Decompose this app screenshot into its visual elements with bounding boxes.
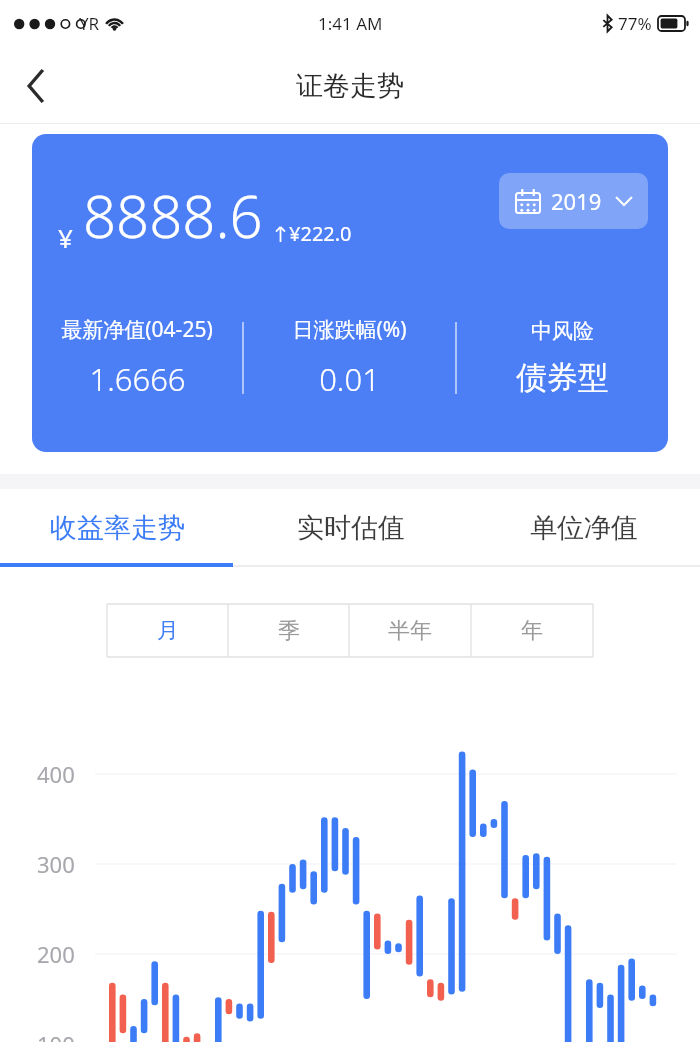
button[interactable]: Back xyxy=(8,58,64,114)
staticText: ¥ xyxy=(58,220,73,255)
button[interactable]: 实时估值 xyxy=(234,489,467,567)
staticText: 实时估值 xyxy=(297,511,405,545)
staticText: 最新净值(04-25) xyxy=(61,315,213,344)
button[interactable]: 季 xyxy=(228,604,349,657)
staticText: 半年 xyxy=(388,617,432,645)
staticText: 收益率走势 xyxy=(50,511,185,545)
button[interactable]: 月 xyxy=(107,604,228,657)
staticText: 单位净值 xyxy=(530,511,638,545)
button[interactable]: 收益率走势 xyxy=(0,489,234,567)
staticText: 年 xyxy=(521,617,543,645)
staticText: 77% xyxy=(618,12,652,35)
staticText: 400 xyxy=(37,759,75,789)
staticText: 债券型 xyxy=(516,358,609,397)
staticText: 100 xyxy=(37,1029,75,1042)
staticText: 8888.6 xyxy=(83,176,263,255)
staticText: 0.01 xyxy=(319,358,380,400)
staticText: YR xyxy=(79,12,100,35)
staticText: 证卷走势 xyxy=(296,69,404,103)
staticText: 季 xyxy=(278,617,300,645)
button[interactable]: 年 xyxy=(471,604,593,657)
staticText: 1.6666 xyxy=(89,358,186,400)
staticText: 中风险 xyxy=(531,318,594,344)
staticText: 2019 xyxy=(551,186,602,216)
button[interactable]: ¥ xyxy=(32,134,668,452)
staticText: 月 xyxy=(157,617,179,645)
button[interactable]: 单位净值 xyxy=(467,489,700,567)
staticText: 300 xyxy=(37,849,75,879)
staticText: 日涨跌幅(%) xyxy=(292,315,407,344)
button[interactable]: 半年 xyxy=(349,604,471,657)
button[interactable]: 2019 xyxy=(499,173,648,229)
staticText: 1:41 AM xyxy=(318,12,383,35)
staticText: 200 xyxy=(37,939,75,969)
staticText: ¥222.0 xyxy=(289,220,352,247)
